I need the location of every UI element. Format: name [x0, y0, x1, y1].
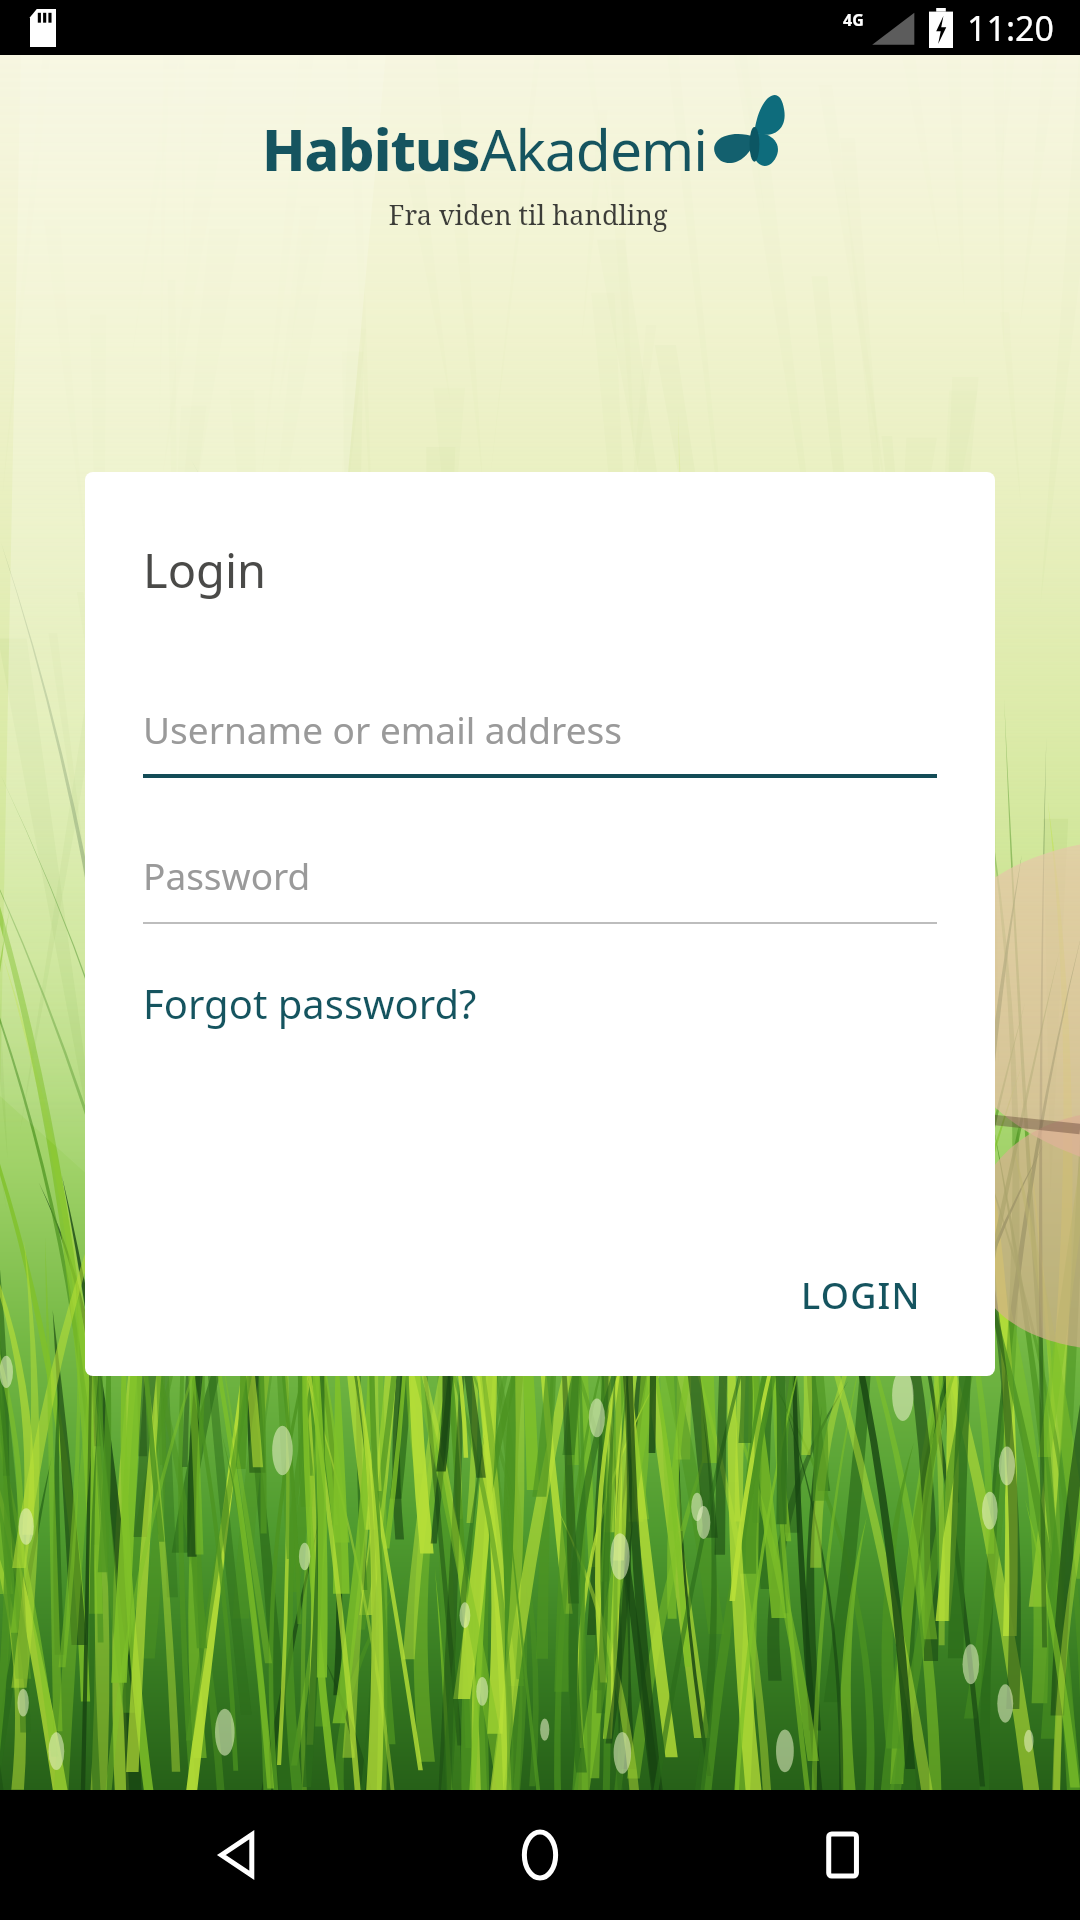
button[interactable]: Username or email address — [143, 704, 937, 778]
staticText: Habitus — [262, 110, 480, 188]
staticText: Username or email address — [143, 704, 622, 754]
button[interactable]: Recent apps — [778, 1790, 908, 1920]
button[interactable]: Password — [143, 850, 937, 924]
staticText: LOGIN — [801, 1271, 921, 1320]
staticText: 4G — [843, 9, 864, 31]
staticText: Password — [143, 850, 311, 900]
button[interactable]: Back — [173, 1790, 303, 1920]
button[interactable]: Home — [475, 1790, 605, 1920]
staticText: Akademi — [480, 110, 708, 188]
button[interactable]: LOGIN — [785, 1257, 937, 1334]
staticText: Forgot password? — [143, 976, 477, 1030]
button[interactable]: Forgot password? — [143, 976, 477, 1030]
staticText: Login — [143, 538, 267, 602]
staticText: 11:20 — [967, 5, 1054, 51]
staticText: Fra viden til handling — [0, 196, 1068, 233]
